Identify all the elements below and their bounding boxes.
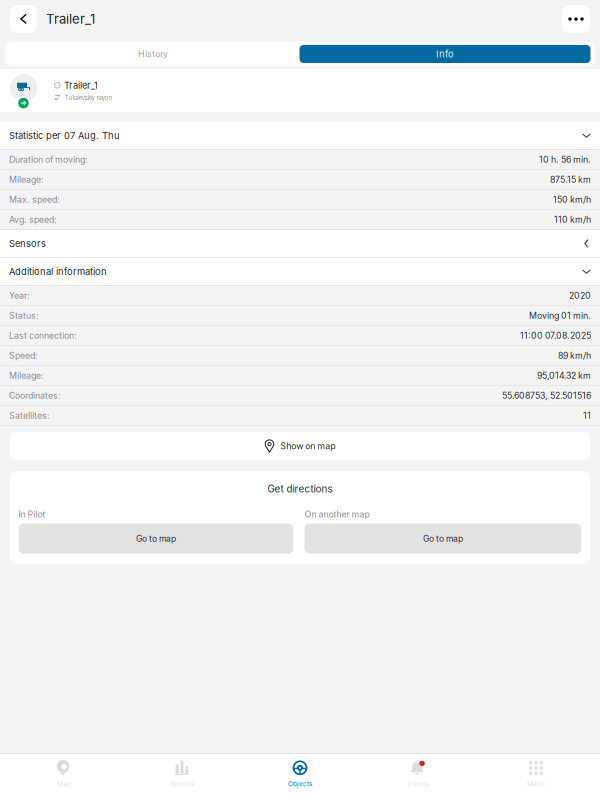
staticText: In Pilot [18,509,45,519]
button[interactable]: Reports [123,754,241,800]
button[interactable]: Menu [477,754,595,800]
button[interactable]: Show on map [10,432,590,460]
staticText: Go to map [423,533,463,544]
staticText: On another map [304,509,369,519]
staticText: Mileage: [9,174,44,185]
staticText: 150 km/h [553,194,591,205]
staticText: Coordinates: [9,390,61,401]
button[interactable]: History [6,42,299,66]
button[interactable]: Go to map [304,524,581,554]
button[interactable]: Map [5,754,123,800]
staticText: Menu [527,780,545,788]
staticText: 95,014.32 km [537,370,591,381]
staticText: Year: [9,290,30,301]
button[interactable]: Back [10,5,37,33]
button[interactable]: Sensors [0,230,600,258]
staticText: 55.608753, 52.501516 [502,390,591,401]
staticText: Tukaevskiy rayon [64,94,112,101]
staticText: Additional information [9,266,107,277]
staticText: 89 km/h [558,350,591,361]
button[interactable]: Go to map [18,524,293,554]
staticText: Mileage: [9,370,44,381]
staticText: Show on map [280,441,335,451]
staticText: Duration of moving: [9,154,88,165]
staticText: Moving 01 min. [529,310,591,321]
button[interactable]: More options [562,5,590,33]
staticText: Info [436,48,454,60]
staticText: Speed: [9,350,38,361]
staticText: Avg. speed: [9,214,57,225]
staticText: Get directions [267,483,332,495]
staticText: Satellites: [9,410,50,421]
staticText: 11 [583,410,591,421]
staticText: Reports [170,780,194,788]
staticText: 110 km/h [554,214,591,225]
staticText: 2020 [569,290,591,301]
staticText: History [138,49,168,59]
staticText: Trailer_1 [64,80,98,91]
button[interactable]: Events [359,754,477,800]
button[interactable]: Additional information [0,258,600,286]
staticText: 10 h. 56 min. [539,154,591,165]
button[interactable]: Info [299,45,590,63]
staticText: Map [57,780,71,788]
staticText: Status: [9,310,39,321]
staticText: Objects [288,780,312,788]
staticText: Trailer_1 [46,11,95,27]
staticText: 11:00 07.08.2025 [520,330,591,341]
staticText: 875.15 km [550,174,591,185]
staticText: Events [408,780,428,788]
staticText: Last connection: [9,330,77,341]
staticText: Max. speed: [9,194,60,205]
staticText: Statistic per 07 Aug. Thu [9,130,120,141]
button[interactable]: Objects [241,754,359,800]
button[interactable]: Statistic per 07 Aug. Thu [0,122,600,150]
staticText: Go to map [136,533,176,544]
staticText: Sensors [9,238,46,249]
